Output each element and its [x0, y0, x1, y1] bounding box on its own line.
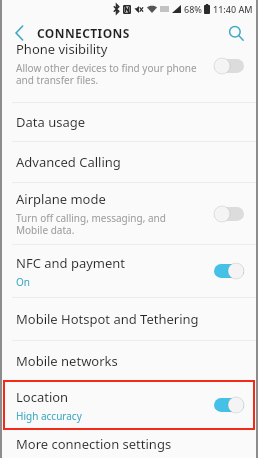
staticText: Location	[16, 388, 69, 406]
staticText: Turn off calling, messaging, and Mobile …	[16, 211, 166, 237]
button[interactable]: Data usage	[2, 103, 256, 141]
staticText: Advanced Calling	[16, 153, 121, 171]
staticText: CONNECTIONS	[37, 25, 130, 41]
button[interactable]: Airplane mode	[2, 183, 256, 244]
button[interactable]: Mobile Hotspot and Tethering	[2, 298, 256, 340]
staticText: Mobile networks	[16, 352, 118, 370]
staticText: On	[16, 275, 30, 289]
button[interactable]: Mobile networks	[2, 341, 256, 380]
staticText: Allow other devices to find your phone a…	[16, 61, 197, 87]
button[interactable]: Phone visibility	[2, 48, 256, 102]
staticText: More connection settings	[16, 435, 172, 453]
button[interactable]: Advanced Calling	[2, 142, 256, 182]
staticText: Data usage	[16, 113, 86, 131]
button[interactable]: Location	[3, 380, 255, 430]
button[interactable]: Search	[224, 21, 248, 45]
staticText: Airplane mode	[16, 190, 106, 208]
staticText: 11:40 AM	[213, 3, 253, 15]
button[interactable]: More connection settings	[2, 430, 256, 458]
staticText: NFC and payment	[16, 254, 126, 272]
staticText: Mobile Hotspot and Tethering	[16, 310, 199, 328]
button[interactable]: NFC and payment	[2, 245, 256, 297]
button[interactable]: Back	[8, 22, 30, 44]
staticText: Phone visibility	[16, 40, 108, 58]
staticText: High accuracy	[16, 409, 82, 423]
staticText: 68%	[184, 3, 202, 15]
